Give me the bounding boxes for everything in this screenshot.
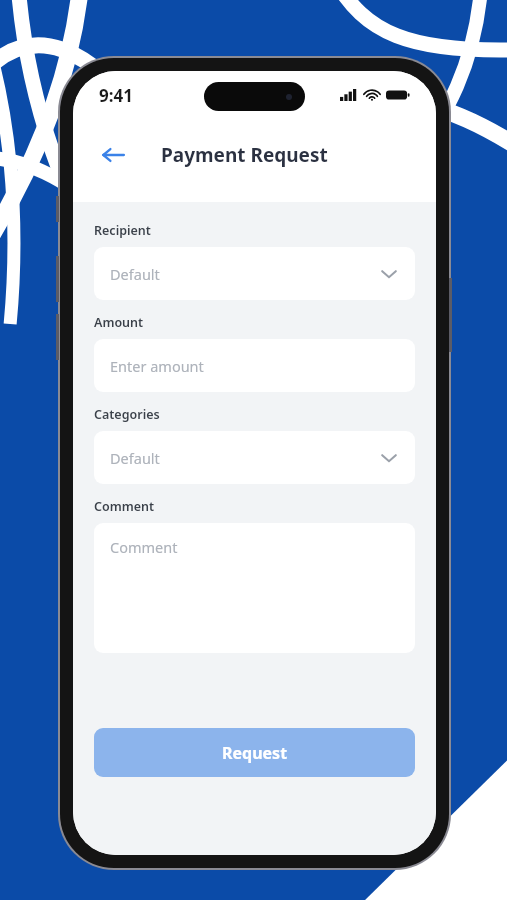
staticText: Enter amount	[110, 356, 204, 376]
staticText: Default	[110, 448, 160, 468]
staticText: Default	[110, 264, 160, 284]
button[interactable]: Enter amount	[94, 339, 415, 392]
staticText: Comment	[110, 537, 178, 557]
button[interactable]: Default	[94, 431, 415, 484]
staticText: 9:41	[99, 84, 133, 107]
button[interactable]: Request	[94, 728, 415, 777]
staticText: Payment Request	[161, 142, 328, 168]
button[interactable]: Back	[91, 133, 135, 177]
staticText: Recipient	[94, 222, 151, 239]
button[interactable]: Comment	[94, 523, 415, 653]
button[interactable]: Default	[94, 247, 415, 300]
staticText: Amount	[94, 314, 144, 331]
staticText: Categories	[94, 406, 160, 423]
staticText: Request	[222, 742, 288, 764]
staticText: Comment	[94, 498, 155, 515]
